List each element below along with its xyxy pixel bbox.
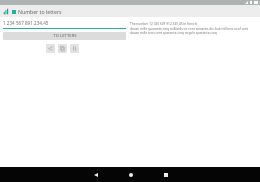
button[interactable]: Copy	[58, 44, 67, 53]
staticText: TO LETTERS	[53, 33, 77, 39]
staticText: douze mille quarante-cinq milliards six …	[130, 27, 256, 35]
staticText: 1 234 567 891 234,45	[3, 20, 49, 26]
button[interactable]: Swap	[70, 44, 79, 53]
staticText: Number to letters	[18, 8, 62, 15]
button[interactable]: Share	[46, 44, 55, 53]
button[interactable]: Back	[88, 167, 104, 182]
button[interactable]: TO LETTERS	[3, 32, 126, 40]
button[interactable]: Home	[123, 167, 139, 182]
button[interactable]: 1 234 567 891 234,45	[3, 20, 126, 29]
staticText: The number 12 345 678 912 345,45 in fren…	[130, 22, 198, 26]
button[interactable]: Recents	[158, 167, 174, 182]
